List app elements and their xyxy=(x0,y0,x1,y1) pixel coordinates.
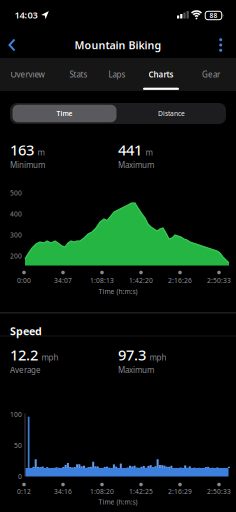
staticText: 0 xyxy=(18,472,22,481)
staticText: 1:42:20 xyxy=(129,276,153,285)
staticText: 0:00 xyxy=(17,276,31,285)
staticText: 1:42:25 xyxy=(129,487,153,496)
staticText: 0:12 xyxy=(17,487,31,496)
staticText: m xyxy=(37,147,44,158)
staticText: 2:16:29 xyxy=(168,487,192,496)
staticText: Time (h:m:s) xyxy=(98,498,137,506)
button[interactable]: Overview xyxy=(10,61,44,87)
staticText: 14:03 xyxy=(14,9,37,21)
staticText: 2:16:26 xyxy=(168,276,192,285)
staticText: Average xyxy=(10,364,41,375)
staticText: 441 xyxy=(118,140,142,159)
staticText: 2:50:33 xyxy=(207,276,231,285)
staticText: 2:50:33 xyxy=(207,487,231,496)
staticText: Stats xyxy=(69,69,87,80)
staticText: mph xyxy=(149,352,166,363)
staticText: 97.3 xyxy=(118,345,146,364)
staticText: 50 xyxy=(14,441,22,450)
staticText: 34:07 xyxy=(54,276,72,285)
staticText: Overview xyxy=(10,69,44,80)
staticText: m xyxy=(145,147,152,158)
button[interactable]: Back xyxy=(2,33,22,57)
staticText: Time (h:m:s) xyxy=(98,287,137,296)
staticText: Charts xyxy=(148,69,173,80)
staticText: mph xyxy=(41,352,58,363)
staticText: Distance xyxy=(158,109,185,118)
staticText: 88 xyxy=(209,11,217,20)
staticText: Mountain Biking xyxy=(74,38,161,52)
button[interactable]: Gear xyxy=(202,61,220,87)
staticText: 1:08:20 xyxy=(90,487,114,496)
staticText: Maximum xyxy=(118,159,154,170)
staticText: 300 xyxy=(10,231,22,239)
button[interactable]: Laps xyxy=(108,61,125,87)
staticText: Time xyxy=(56,109,72,118)
button[interactable]: Distance xyxy=(119,105,223,122)
staticText: Speed xyxy=(10,324,42,338)
button[interactable]: More options xyxy=(210,33,230,57)
staticText: 34:16 xyxy=(54,487,72,496)
staticText: Laps xyxy=(108,69,125,80)
staticText: Minimum xyxy=(10,159,45,170)
button[interactable]: Time xyxy=(12,105,116,122)
staticText: 400 xyxy=(10,210,22,218)
staticText: Maximum xyxy=(118,364,154,375)
staticText: 200 xyxy=(10,252,22,260)
staticText: 500 xyxy=(10,189,22,197)
staticText: 12.2 xyxy=(10,345,38,364)
staticText: Gear xyxy=(202,69,220,80)
staticText: 1:08:13 xyxy=(90,276,114,285)
staticText: 100 xyxy=(10,410,22,419)
staticText: 163 xyxy=(10,140,34,159)
button[interactable]: Charts xyxy=(148,61,173,87)
button[interactable]: Stats xyxy=(69,61,87,87)
